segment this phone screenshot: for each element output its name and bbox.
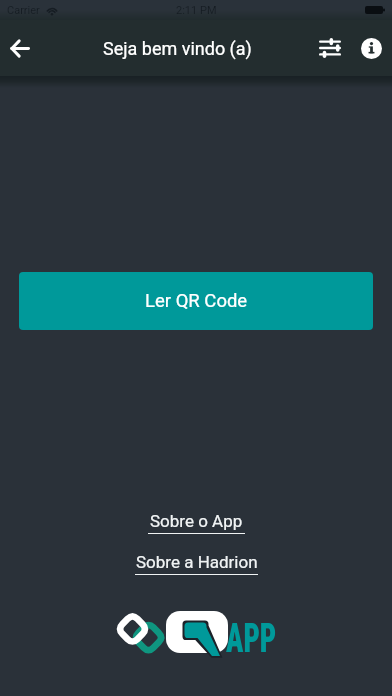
button[interactable]: Filter settings (309, 20, 351, 76)
button[interactable]: Ler QR Code (19, 272, 373, 330)
staticText: APP (226, 614, 276, 660)
button[interactable]: Sobre a Hadrion (129, 551, 264, 576)
staticText: Sobre a Hadrion (136, 552, 258, 572)
button[interactable]: Sobre o App (142, 510, 251, 535)
staticText: Seja bem vindo (a) (103, 38, 252, 59)
staticText: Sobre o App (150, 511, 243, 531)
button[interactable]: Information (351, 20, 392, 76)
staticText: Carrier (7, 4, 40, 17)
button[interactable]: Back (0, 20, 40, 76)
staticText: 2:11 PM (176, 4, 217, 17)
staticText: Ler QR Code (145, 290, 248, 312)
